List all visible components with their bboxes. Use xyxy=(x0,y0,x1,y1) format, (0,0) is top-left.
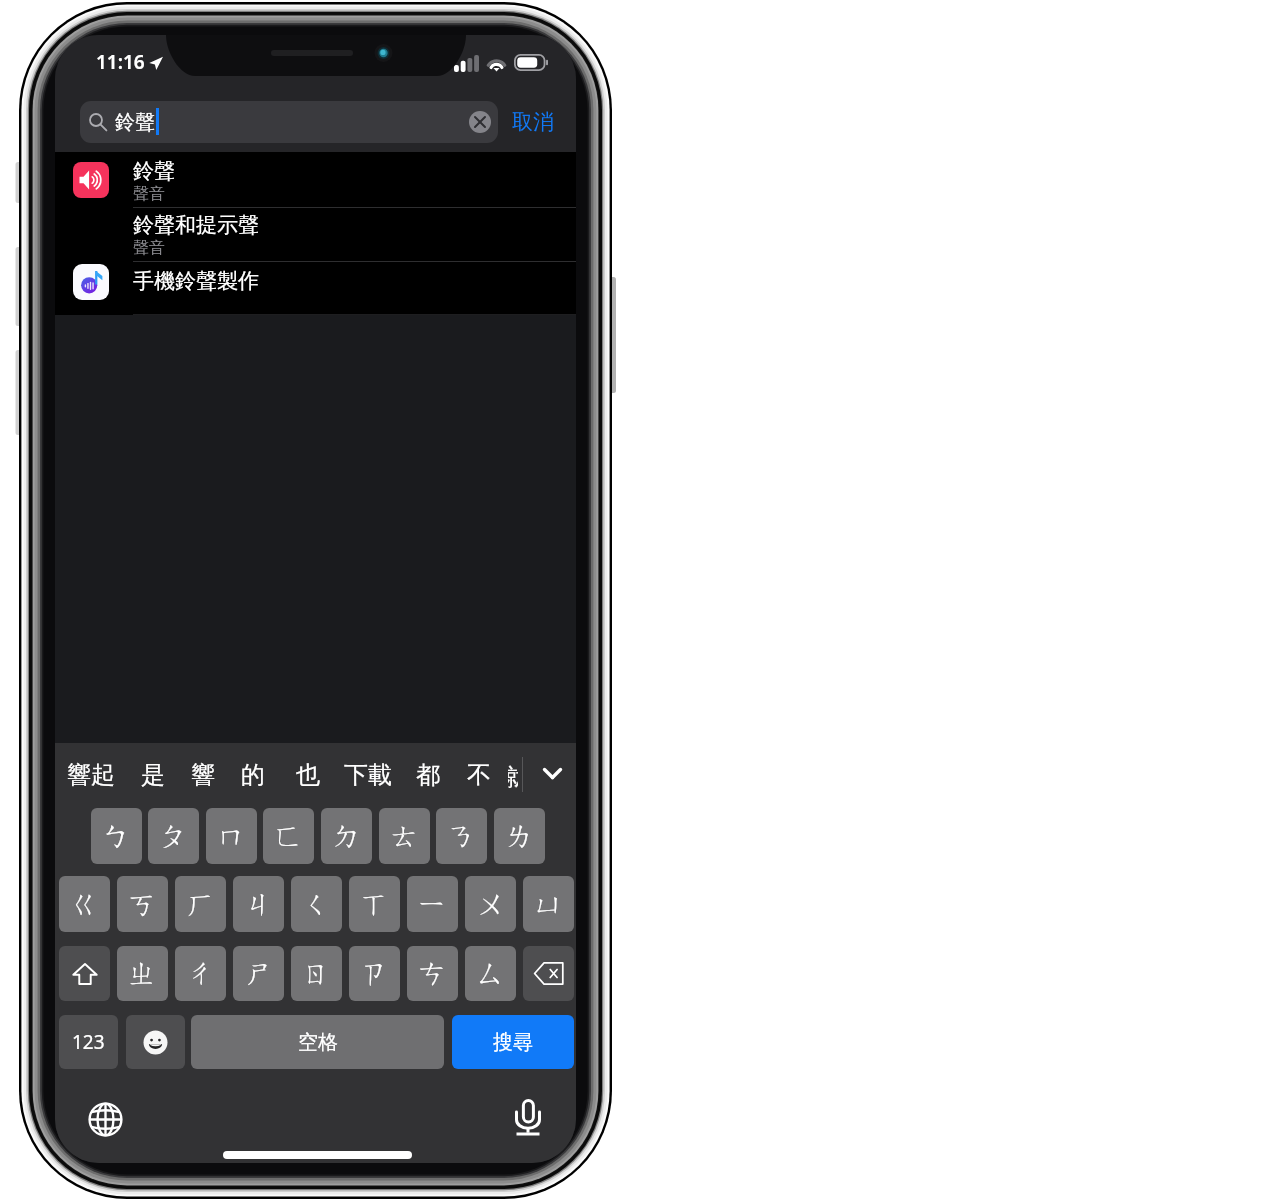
button[interactable]: Emoji xyxy=(126,1015,185,1069)
staticText: ㄓ xyxy=(128,955,158,992)
button[interactable]: ㄓ xyxy=(117,946,168,1001)
staticText: ㄕ xyxy=(244,955,274,992)
staticText: ㄏ xyxy=(186,886,216,923)
button[interactable]: 搜尋 xyxy=(452,1015,574,1069)
staticText: ㄖ xyxy=(302,955,332,992)
staticText: ㄋ xyxy=(447,818,477,855)
staticText: 搜尋 xyxy=(493,1030,533,1055)
button[interactable]: 也 xyxy=(292,755,324,795)
staticText: ㄒ xyxy=(360,886,390,923)
button[interactable]: 鈴聲和提示聲 xyxy=(55,207,576,261)
button[interactable]: ㄧ xyxy=(407,876,458,932)
button[interactable]: 123 xyxy=(59,1015,118,1069)
staticText: 手機鈴聲製作 xyxy=(133,268,259,294)
staticText: ㄊ xyxy=(390,818,420,855)
button[interactable]: 鈴聲 xyxy=(80,101,498,143)
button[interactable]: Shift xyxy=(59,946,110,1001)
staticText: ㄆ xyxy=(159,818,189,855)
button[interactable]: 都 xyxy=(412,755,444,795)
staticText: ㄘ xyxy=(418,955,448,992)
button[interactable]: 鈴聲 xyxy=(55,152,576,207)
button[interactable]: 是 xyxy=(137,755,169,795)
button[interactable]: 響 xyxy=(187,755,219,795)
staticText: ㄑ xyxy=(302,886,332,923)
button[interactable]: Next keyboard xyxy=(87,1101,123,1137)
button[interactable]: ㄎ xyxy=(117,876,168,932)
staticText: 123 xyxy=(72,1029,105,1055)
button[interactable]: Clear text xyxy=(469,111,491,133)
button[interactable]: 不 xyxy=(463,755,495,795)
button[interactable]: Hide suggestions xyxy=(536,755,568,791)
button[interactable]: ㄆ xyxy=(148,808,199,864)
button[interactable]: ㄈ xyxy=(263,808,314,864)
button[interactable]: ㄖ xyxy=(291,946,342,1001)
button[interactable]: ㄩ xyxy=(523,876,574,932)
button[interactable]: ㄒ xyxy=(349,876,400,932)
button[interactable]: Dictation xyxy=(510,1094,546,1140)
staticText: 下載 xyxy=(344,760,392,790)
staticText: ㄙ xyxy=(476,955,506,992)
button[interactable]: ㄗ xyxy=(349,946,400,1001)
button[interactable]: 取消 xyxy=(507,105,559,139)
staticText: ㄗ xyxy=(360,955,390,992)
button[interactable]: ㄑ xyxy=(291,876,342,932)
staticText: ㄨ xyxy=(476,886,506,923)
button[interactable]: 響起 xyxy=(63,755,118,795)
staticText: ㄔ xyxy=(186,955,216,992)
button[interactable]: ㄔ xyxy=(175,946,226,1001)
staticText: ㄇ xyxy=(217,818,247,855)
staticText: ㄎ xyxy=(128,886,158,923)
button[interactable]: ㄙ xyxy=(465,946,516,1001)
staticText: 鈴聲 xyxy=(115,110,155,135)
staticText: 也 xyxy=(296,760,320,790)
staticText: 是 xyxy=(141,760,165,790)
staticText: ㄈ xyxy=(274,818,304,855)
button[interactable]: ㄉ xyxy=(321,808,372,864)
staticText: ㄅ xyxy=(102,818,132,855)
button[interactable]: ㄅ xyxy=(91,808,142,864)
staticText: ㄌ xyxy=(505,818,535,855)
button[interactable]: ㄊ xyxy=(379,808,430,864)
staticText: 響起 xyxy=(67,760,115,790)
button[interactable]: ㄏ xyxy=(175,876,226,932)
staticText: 的 xyxy=(241,760,265,790)
button[interactable]: ㄌ xyxy=(494,808,545,864)
staticText: 鈴聲和提示聲 xyxy=(133,212,259,238)
button[interactable]: ㄨ xyxy=(465,876,516,932)
button[interactable]: 下載 xyxy=(340,755,395,795)
button[interactable]: ㄐ xyxy=(233,876,284,932)
button[interactable]: ㄇ xyxy=(206,808,257,864)
staticText: 不 xyxy=(467,760,491,790)
button[interactable]: ㄘ xyxy=(407,946,458,1001)
staticText: 11:16 xyxy=(96,49,145,75)
button[interactable]: ㄋ xyxy=(436,808,487,864)
staticText: ㄉ xyxy=(332,818,362,855)
button[interactable]: Backspace xyxy=(523,946,574,1001)
staticText: ㄩ xyxy=(534,886,564,923)
staticText: 取消 xyxy=(512,109,554,135)
button[interactable]: ㄕ xyxy=(233,946,284,1001)
staticText: 空格 xyxy=(298,1030,338,1055)
staticText: ㄧ xyxy=(418,886,448,923)
button[interactable]: 的 xyxy=(237,755,269,795)
staticText: ㄍ xyxy=(70,886,100,923)
staticText: 響 xyxy=(191,760,215,790)
staticText: 聲音 xyxy=(133,238,165,258)
staticText: 就 xyxy=(508,762,518,788)
button[interactable]: 空格 xyxy=(191,1015,444,1069)
button[interactable]: 手機鈴聲製作 xyxy=(55,261,576,315)
staticText: 聲音 xyxy=(133,184,165,204)
button[interactable]: ㄍ xyxy=(59,876,110,932)
staticText: ㄐ xyxy=(244,886,274,923)
staticText: 都 xyxy=(416,760,440,790)
staticText: 鈴聲 xyxy=(133,158,175,184)
